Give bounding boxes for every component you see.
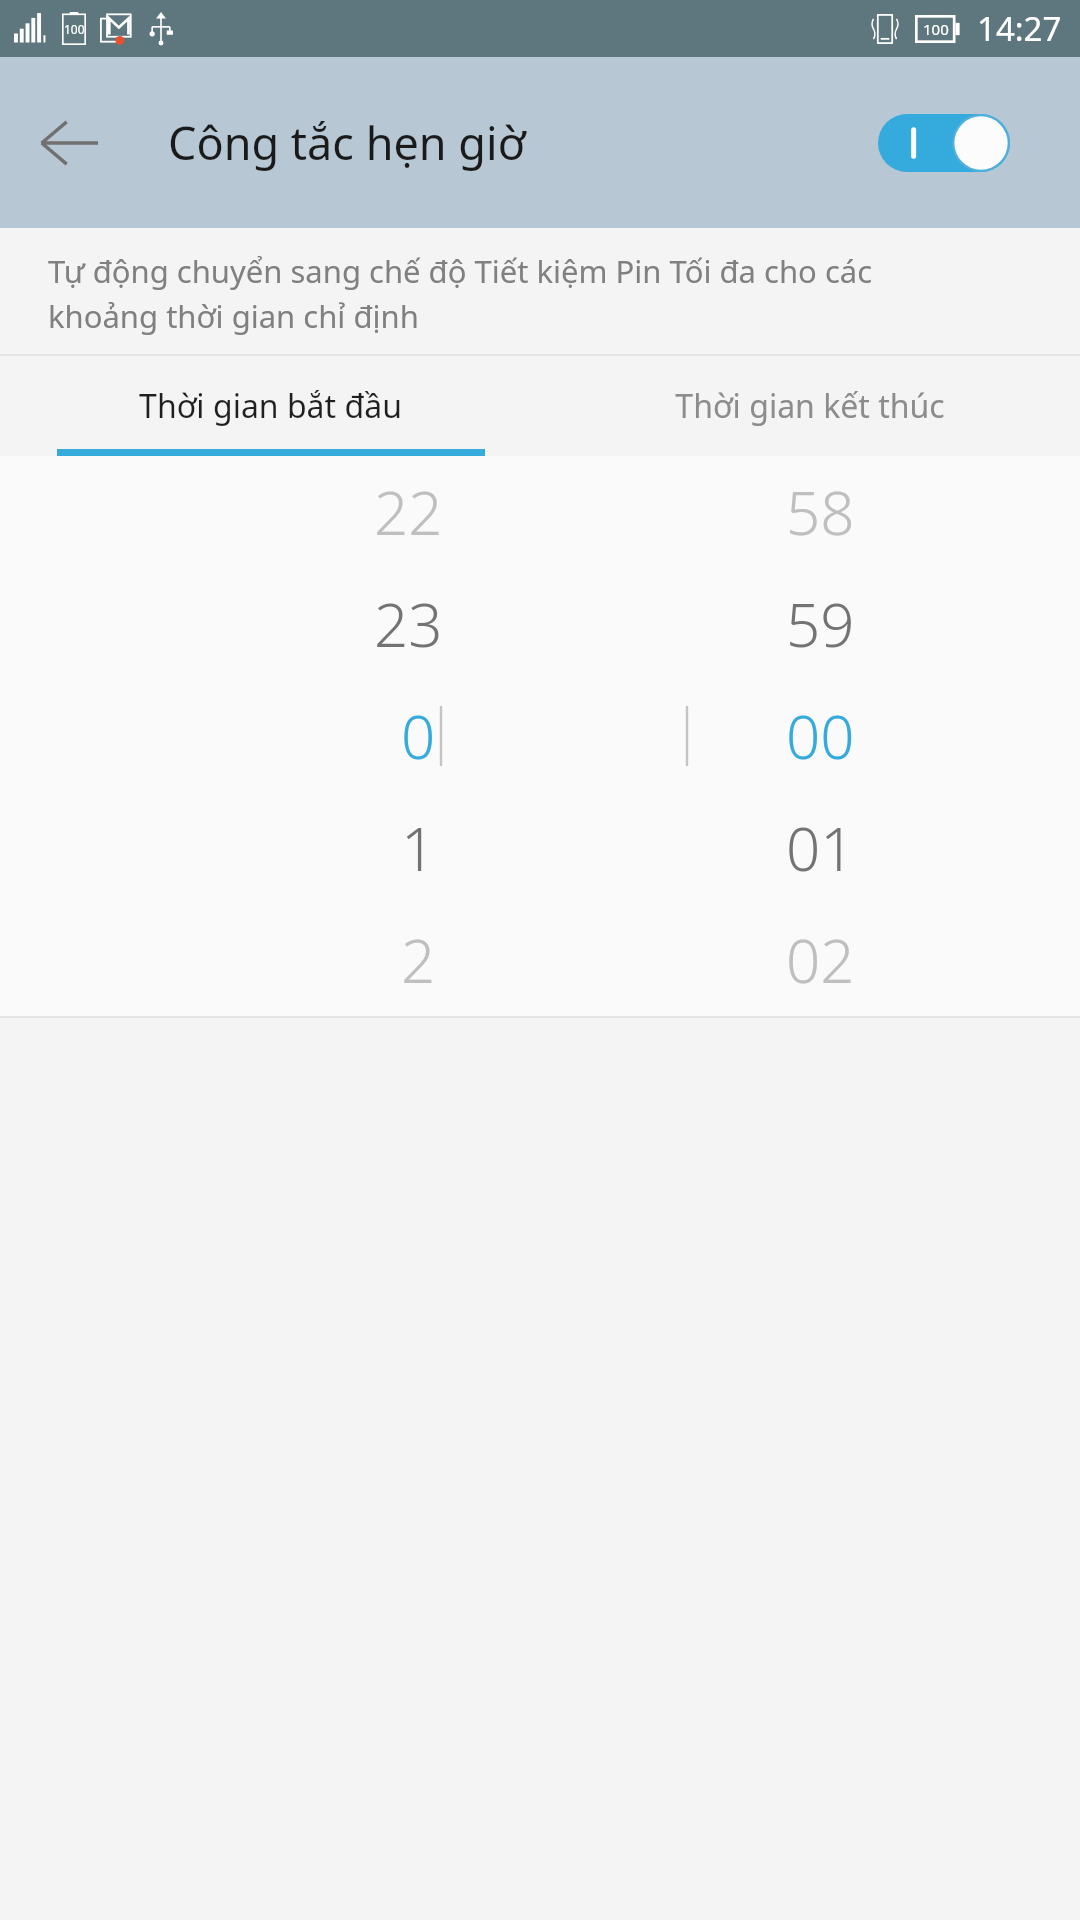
staticText: Thời gian kết thúc [675,384,945,428]
button[interactable]: Thời gian kết thúc [540,356,1080,456]
staticText: 01 [786,807,855,889]
staticText: 02 [786,919,855,1001]
staticText: 1 [401,807,436,889]
button[interactable]: 22 [0,456,540,1016]
staticText: 23 [374,583,443,665]
button[interactable]: 58 [540,456,1080,1016]
staticText: 2 [401,919,436,1001]
staticText: 14:27 [977,6,1062,51]
button[interactable]: Enable timer switch [878,114,1010,172]
staticText: 100 [64,21,85,37]
staticText: 58 [786,471,855,553]
staticText: 22 [374,471,443,553]
staticText: 59 [786,583,855,665]
staticText: 0 [401,695,436,777]
staticText: 100 [923,19,949,39]
staticText: Tự động chuyển sang chế độ Tiết kiệm Pin… [48,250,990,337]
staticText: Thời gian bắt đầu [139,384,402,428]
button[interactable]: Thời gian bắt đầu [0,356,540,456]
staticText: 00 [786,695,855,777]
staticText: Công tắc hẹn giờ [168,112,526,173]
button[interactable]: Back [30,104,108,182]
